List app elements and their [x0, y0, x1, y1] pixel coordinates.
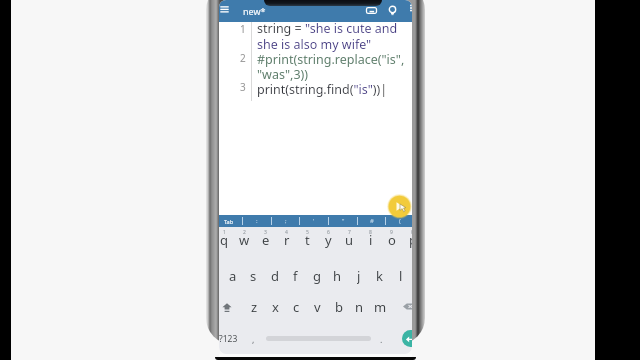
button[interactable]: ": [329, 215, 357, 227]
button[interactable]: Navigation menu: [219, 1, 233, 18]
staticText: ': [313, 217, 315, 225]
staticText: h: [333, 267, 342, 284]
button[interactable]: x: [265, 298, 286, 315]
button[interactable]: ?123: [219, 329, 238, 348]
button[interactable]: g: [306, 267, 327, 284]
button[interactable]: Hints: [383, 1, 401, 19]
button[interactable]: ;: [272, 215, 300, 227]
staticText: 7: [348, 229, 351, 236]
staticText: f: [293, 267, 298, 284]
button[interactable]: i: [360, 231, 381, 248]
staticText: y: [325, 231, 332, 248]
button[interactable]: :: [243, 215, 271, 227]
staticText: 2: [240, 51, 246, 65]
staticText: 1: [240, 22, 246, 36]
staticText: d: [271, 267, 279, 284]
button[interactable]: Run: [387, 194, 412, 219]
staticText: k: [376, 267, 383, 284]
staticText: x: [272, 298, 279, 315]
staticText: (: [399, 217, 401, 225]
button[interactable]: Enter: [402, 330, 412, 347]
staticText: new*: [243, 5, 266, 17]
staticText: u: [345, 231, 354, 248]
staticText: 5: [306, 229, 309, 236]
staticText: i: [369, 231, 373, 248]
button[interactable]: More options: [404, 4, 412, 19]
staticText: e: [262, 231, 270, 248]
button[interactable]: Shift: [219, 298, 244, 315]
staticText: :: [256, 217, 258, 225]
button[interactable]: v: [307, 298, 328, 315]
staticText: n: [355, 298, 364, 315]
staticText: w: [239, 231, 250, 248]
button[interactable]: b: [328, 298, 349, 315]
button[interactable]: o: [381, 231, 402, 248]
button[interactable]: p: [402, 231, 412, 248]
button[interactable]: Backspace: [391, 298, 412, 315]
staticText: 3: [240, 80, 246, 94]
staticText: 0: [411, 229, 412, 236]
button[interactable]: m: [370, 298, 391, 315]
button[interactable]: j: [348, 267, 369, 284]
button[interactable]: f: [285, 267, 306, 284]
button[interactable]: e: [255, 231, 276, 248]
staticText: v: [314, 298, 321, 315]
staticText: 2: [243, 229, 246, 236]
button[interactable]: z: [244, 298, 265, 315]
button[interactable]: t: [297, 231, 318, 248]
staticText: ,: [252, 333, 255, 345]
button[interactable]: y: [318, 231, 339, 248]
button[interactable]: r: [276, 231, 297, 248]
button[interactable]: s: [243, 267, 264, 284]
button[interactable]: (: [386, 215, 412, 227]
button[interactable]: Tab: [219, 215, 242, 227]
button[interactable]: n: [349, 298, 370, 315]
staticText: 3: [264, 229, 267, 236]
button[interactable]: u: [339, 231, 360, 248]
staticText: 1: [223, 229, 226, 236]
staticText: #: [370, 217, 374, 225]
staticText: a: [229, 267, 237, 284]
button[interactable]: w: [234, 231, 255, 248]
staticText: t: [305, 231, 310, 248]
staticText: g: [313, 267, 321, 284]
button[interactable]: q: [219, 231, 234, 248]
staticText: l: [399, 267, 403, 284]
button[interactable]: d: [264, 267, 285, 284]
button[interactable]: h: [327, 267, 348, 284]
staticText: b: [335, 298, 343, 315]
staticText: q: [220, 231, 228, 248]
staticText: Tab: [224, 218, 234, 225]
staticText: ": [342, 217, 345, 225]
button[interactable]: l: [390, 267, 411, 284]
staticText: string = "she is cute and she is also my…: [257, 20, 405, 98]
button[interactable]: .: [369, 329, 393, 348]
staticText: 6: [327, 229, 330, 236]
button[interactable]: Open file: [362, 1, 380, 19]
button[interactable]: a: [222, 267, 243, 284]
button[interactable]: ,: [238, 329, 268, 348]
staticText: 8: [369, 229, 372, 236]
staticText: s: [250, 267, 257, 284]
button[interactable]: #: [358, 215, 386, 227]
staticText: ?123: [219, 333, 238, 345]
staticText: 4: [285, 229, 288, 236]
button[interactable]: ': [300, 215, 328, 227]
staticText: 9: [390, 229, 393, 236]
button[interactable]: k: [369, 267, 390, 284]
staticText: z: [251, 298, 258, 315]
staticText: p: [409, 231, 412, 248]
staticText: o: [388, 231, 396, 248]
button[interactable]: c: [286, 298, 307, 315]
staticText: j: [357, 267, 361, 284]
staticText: r: [284, 231, 290, 248]
staticText: c: [293, 298, 300, 315]
staticText: m: [374, 298, 387, 315]
staticText: ;: [285, 217, 287, 225]
staticText: .: [380, 333, 383, 345]
